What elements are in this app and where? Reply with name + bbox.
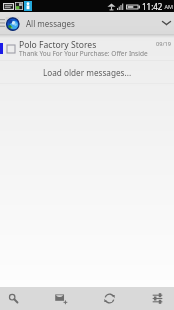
button[interactable]: Navigation drawer: [0, 12, 5, 34]
staticText: 09/19: [156, 40, 171, 48]
button[interactable]: Show folders: [157, 12, 174, 34]
button[interactable]: Polo Factory Stores: [0, 34, 174, 61]
staticText: AM: [163, 3, 173, 10]
staticText: Polo Factory Stores: [19, 39, 97, 51]
button[interactable]: Load older messages...: [0, 61, 174, 84]
button[interactable]: Refresh: [96, 287, 123, 310]
staticText: All messages: [26, 18, 75, 29]
staticText: Load older messages...: [43, 67, 132, 78]
button[interactable]: Compose message: [47, 287, 74, 310]
staticText: 11:42: [142, 1, 163, 12]
button[interactable]: Search: [0, 287, 27, 310]
button[interactable]: Settings: [144, 287, 171, 310]
staticText: Thank You For Your Purchase: Offer Insid…: [19, 49, 148, 58]
